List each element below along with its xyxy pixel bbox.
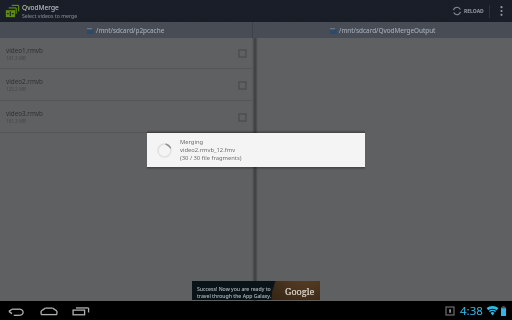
staticText: travel through the App Galaxy. xyxy=(197,292,272,299)
staticText: video2.rmvb xyxy=(6,77,43,86)
staticText: RELOAD xyxy=(464,8,484,15)
staticText: video2.rmvb_12.fmv xyxy=(180,146,236,154)
staticText: 4:38 xyxy=(460,303,483,319)
staticText: 125.2 MB xyxy=(6,86,27,92)
button[interactable]: video2.rmvb xyxy=(0,69,252,100)
button[interactable]: /mnt/sdcard/QvodMergeOutput xyxy=(330,26,436,35)
button[interactable]: Recent apps xyxy=(67,301,94,320)
staticText: Select videos to merge xyxy=(22,12,78,19)
staticText: /mnt/sdcard/QvodMergeOutput xyxy=(339,26,436,35)
button[interactable]: Home xyxy=(35,301,62,320)
button[interactable]: /mnt/sdcard/p2pcache xyxy=(87,26,165,35)
button[interactable]: Select video3.rmvb xyxy=(233,108,251,126)
button[interactable]: More options xyxy=(490,0,512,22)
staticText: Success! Now you are ready to xyxy=(197,285,271,292)
button[interactable]: QvodMerge xyxy=(0,0,82,22)
staticText: /mnt/sdcard/p2pcache xyxy=(96,26,165,35)
staticText: (30 / 30 file fragments) xyxy=(180,154,242,162)
button[interactable]: video1.rmvb xyxy=(0,38,252,68)
button[interactable]: Select video2.rmvb xyxy=(233,76,251,94)
staticText: Google xyxy=(285,285,315,297)
button[interactable]: Select video1.rmvb xyxy=(233,44,251,62)
staticText: video1.rmvb xyxy=(6,46,43,55)
button[interactable]: Success! Now you are ready to xyxy=(192,281,320,300)
staticText: 161.3 MB xyxy=(6,55,27,61)
staticText: video3.rmvb xyxy=(6,109,43,118)
button[interactable]: video3.rmvb xyxy=(0,101,252,132)
button[interactable]: RELOAD xyxy=(447,0,489,22)
staticText: 161.3 MB xyxy=(6,118,27,124)
button[interactable]: Back xyxy=(3,301,30,320)
staticText: QvodMerge xyxy=(22,3,59,12)
staticText: Merging xyxy=(180,138,204,146)
